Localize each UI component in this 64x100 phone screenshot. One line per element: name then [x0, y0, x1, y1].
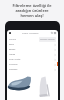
button[interactable]: Beden — [7, 47, 58, 52]
staticText: Kategori — [9, 68, 18, 71]
button[interactable]: Kategori — [7, 67, 58, 72]
button[interactable]: Fiyat Aralığı — [7, 57, 58, 62]
staticText: Beden — [9, 48, 16, 51]
staticText: Kadın Ayakkabı — [22, 32, 39, 35]
button[interactable]: Menu — [9, 32, 11, 34]
staticText: Sıralama — [9, 63, 18, 66]
button[interactable]: Topuklu ayakkabı — [32, 74, 58, 100]
button[interactable]: Erkek ayakkabı — [7, 74, 32, 100]
button[interactable]: Search — [51, 32, 53, 34]
staticText: Renk — [9, 43, 14, 46]
button[interactable]: Renk — [7, 42, 58, 47]
staticText: Filtrele — [9, 38, 16, 41]
staticText: Marka — [9, 53, 16, 56]
staticText: Filtreleme özelliği ile aradığın ürünler… — [12, 3, 52, 18]
button[interactable]: Filtreleri Temizle — [39, 37, 56, 42]
button[interactable]: Sıralama — [7, 62, 58, 67]
staticText: Filtreleri Temizle — [40, 38, 55, 41]
staticText: Fiyat Aralığı — [9, 58, 21, 61]
button[interactable]: Marka — [7, 52, 58, 57]
